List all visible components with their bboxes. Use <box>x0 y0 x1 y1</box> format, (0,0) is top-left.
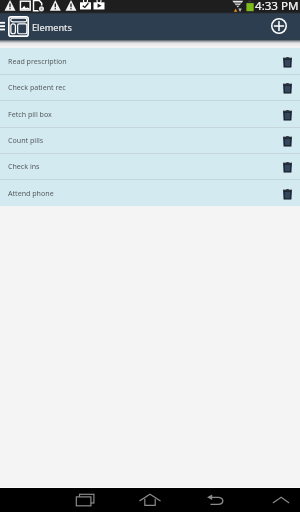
button[interactable]: Check patient rec <box>0 74 300 100</box>
button[interactable]: Show keyboard <box>261 488 300 512</box>
staticText: Elements <box>32 21 72 34</box>
button[interactable]: Count pills <box>0 127 300 153</box>
staticText: Check ins <box>8 161 274 171</box>
button[interactable]: Back <box>195 488 235 512</box>
button[interactable]: Add element <box>267 14 290 37</box>
staticText: Attend phone <box>8 188 274 198</box>
staticText: Check patient rec <box>8 82 274 92</box>
button[interactable]: Attend phone <box>0 180 300 206</box>
button[interactable]: App icon <box>8 16 29 37</box>
button[interactable]: Home <box>130 488 170 512</box>
button[interactable]: Read prescription <box>0 48 300 74</box>
button[interactable]: Open navigation drawer <box>0 11 7 39</box>
button[interactable]: Delete Fetch pill box <box>274 101 300 127</box>
staticText: Read prescription <box>8 56 274 66</box>
button[interactable]: Delete Check patient rec <box>274 74 300 100</box>
button[interactable]: Delete Count pills <box>274 127 300 153</box>
staticText: Fetch pill box <box>8 109 274 119</box>
button[interactable]: Delete Attend phone <box>274 180 300 206</box>
staticText: Count pills <box>8 135 274 145</box>
button[interactable]: Recent apps <box>65 488 105 512</box>
button[interactable]: Check ins <box>0 153 300 179</box>
staticText: 4:33 PM <box>255 0 299 10</box>
button[interactable]: Delete Check ins <box>274 153 300 179</box>
button[interactable]: Fetch pill box <box>0 101 300 127</box>
button[interactable]: Delete Read prescription <box>274 48 300 74</box>
